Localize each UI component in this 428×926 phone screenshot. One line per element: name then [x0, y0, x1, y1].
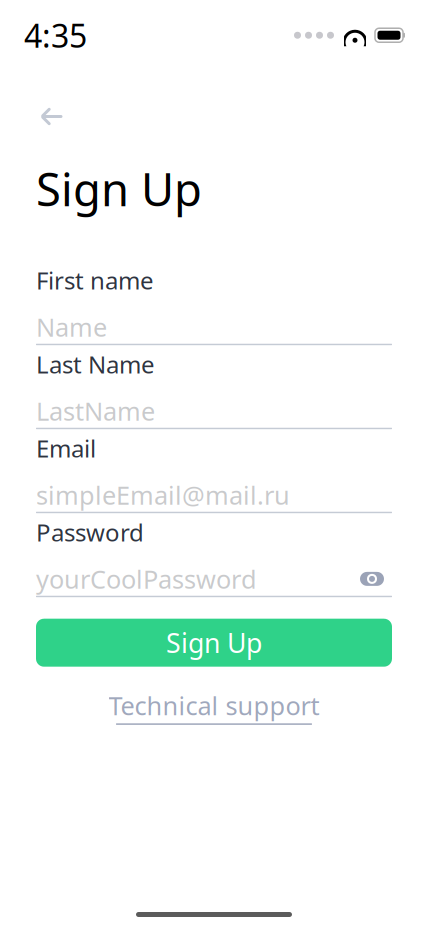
- staticText: Technical support: [108, 689, 319, 722]
- button[interactable]: Sign Up: [36, 619, 392, 667]
- staticText: Last Name: [36, 348, 155, 380]
- staticText: First name: [36, 264, 154, 296]
- button[interactable]: Show password: [352, 564, 392, 594]
- staticText: 4:35: [24, 14, 87, 56]
- staticText: LastName: [36, 394, 155, 428]
- staticText: simpleEmail@mail.ru: [36, 478, 290, 512]
- staticText: Password: [36, 516, 144, 548]
- staticText: Name: [36, 310, 107, 344]
- staticText: yourCoolPassword: [36, 562, 257, 596]
- button[interactable]: Back: [30, 96, 74, 136]
- staticText: Sign Up: [166, 625, 262, 660]
- staticText: Sign Up: [36, 158, 202, 219]
- button[interactable]: Technical support: [108, 689, 319, 725]
- staticText: Email: [36, 432, 96, 464]
